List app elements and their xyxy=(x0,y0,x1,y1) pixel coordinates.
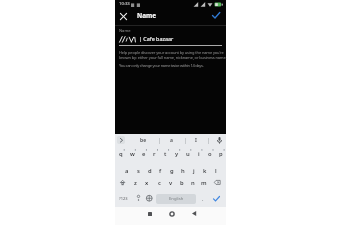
staticText: m xyxy=(201,179,207,187)
staticText: x xyxy=(145,179,149,187)
staticText: y xyxy=(175,150,179,158)
button[interactable]: I xyxy=(185,135,207,145)
button[interactable] xyxy=(144,192,155,204)
staticText: n xyxy=(191,179,195,187)
button[interactable]: c xyxy=(153,177,165,188)
staticText: Name xyxy=(119,28,131,34)
button[interactable]: l xyxy=(210,165,221,176)
button[interactable]: be xyxy=(129,135,158,145)
staticText: ?123 xyxy=(119,196,128,201)
button[interactable]: English xyxy=(156,194,196,204)
staticText: 10:33 xyxy=(119,1,130,7)
staticText: u xyxy=(186,150,190,158)
button[interactable]: g xyxy=(166,165,177,176)
button[interactable] xyxy=(144,208,155,219)
button[interactable] xyxy=(116,9,130,23)
button[interactable]: k xyxy=(199,165,210,176)
button[interactable]: u xyxy=(182,148,193,159)
staticText: g xyxy=(170,167,174,175)
staticText: f xyxy=(159,167,162,175)
staticText: p xyxy=(219,150,223,158)
staticText: c xyxy=(158,179,161,187)
staticText: a xyxy=(170,137,173,144)
button[interactable] xyxy=(166,208,177,219)
staticText: r xyxy=(153,150,156,158)
staticText: | Cafe bazaar xyxy=(139,35,174,42)
button[interactable]: z xyxy=(129,177,141,188)
staticText: b xyxy=(180,179,184,187)
staticText: . xyxy=(202,195,204,202)
staticText: a xyxy=(125,167,129,175)
staticText: English xyxy=(169,196,184,202)
button[interactable]: a xyxy=(159,135,184,145)
staticText: q xyxy=(119,150,123,158)
button[interactable]: b xyxy=(176,177,187,188)
staticText: i xyxy=(198,150,200,158)
button[interactable] xyxy=(115,177,129,188)
button[interactable]: d xyxy=(144,165,155,176)
staticText: I xyxy=(195,137,197,144)
staticText: o xyxy=(208,150,212,158)
staticText: l xyxy=(215,167,217,175)
button[interactable] xyxy=(188,208,199,219)
button[interactable]: i xyxy=(193,148,204,159)
staticText: e xyxy=(142,150,146,158)
button[interactable] xyxy=(118,33,223,46)
staticText: t xyxy=(164,150,167,158)
button[interactable]: n xyxy=(187,177,198,188)
button[interactable]: e xyxy=(138,148,149,159)
button[interactable] xyxy=(209,177,226,188)
button[interactable]: . xyxy=(198,192,208,204)
button[interactable]: r xyxy=(149,148,160,159)
button[interactable] xyxy=(208,192,224,204)
button[interactable]: m xyxy=(198,177,209,188)
staticText: j xyxy=(193,167,195,175)
button[interactable] xyxy=(133,192,143,204)
button[interactable] xyxy=(208,9,223,21)
staticText: k xyxy=(203,167,207,175)
staticText: v xyxy=(169,179,173,187)
button[interactable]: a xyxy=(121,165,133,176)
staticText: z xyxy=(134,179,137,187)
staticText: known by: either your full name, nicknam… xyxy=(119,55,227,60)
button[interactable]: h xyxy=(177,165,188,176)
staticText: h xyxy=(181,167,185,175)
staticText: s xyxy=(137,167,140,175)
staticText: Name xyxy=(137,11,157,20)
button[interactable]: q xyxy=(115,148,127,159)
button[interactable]: ?123 xyxy=(115,192,131,204)
button[interactable]: v xyxy=(165,177,176,188)
staticText: be xyxy=(140,137,147,144)
button[interactable]: s xyxy=(133,165,144,176)
button[interactable]: t xyxy=(160,148,171,159)
button[interactable]: x xyxy=(141,177,153,188)
staticText: You can only change your name twice with… xyxy=(119,63,204,68)
button[interactable] xyxy=(212,135,226,145)
button[interactable]: o xyxy=(204,148,215,159)
staticText: d xyxy=(148,167,152,175)
button[interactable]: p xyxy=(215,148,226,159)
staticText: w xyxy=(130,150,135,158)
button[interactable]: j xyxy=(188,165,199,176)
button[interactable] xyxy=(117,136,125,144)
button[interactable]: w xyxy=(127,148,138,159)
button[interactable]: y xyxy=(171,148,182,159)
staticText: Help people discover your account by usi… xyxy=(119,50,224,55)
button[interactable]: f xyxy=(155,165,166,176)
